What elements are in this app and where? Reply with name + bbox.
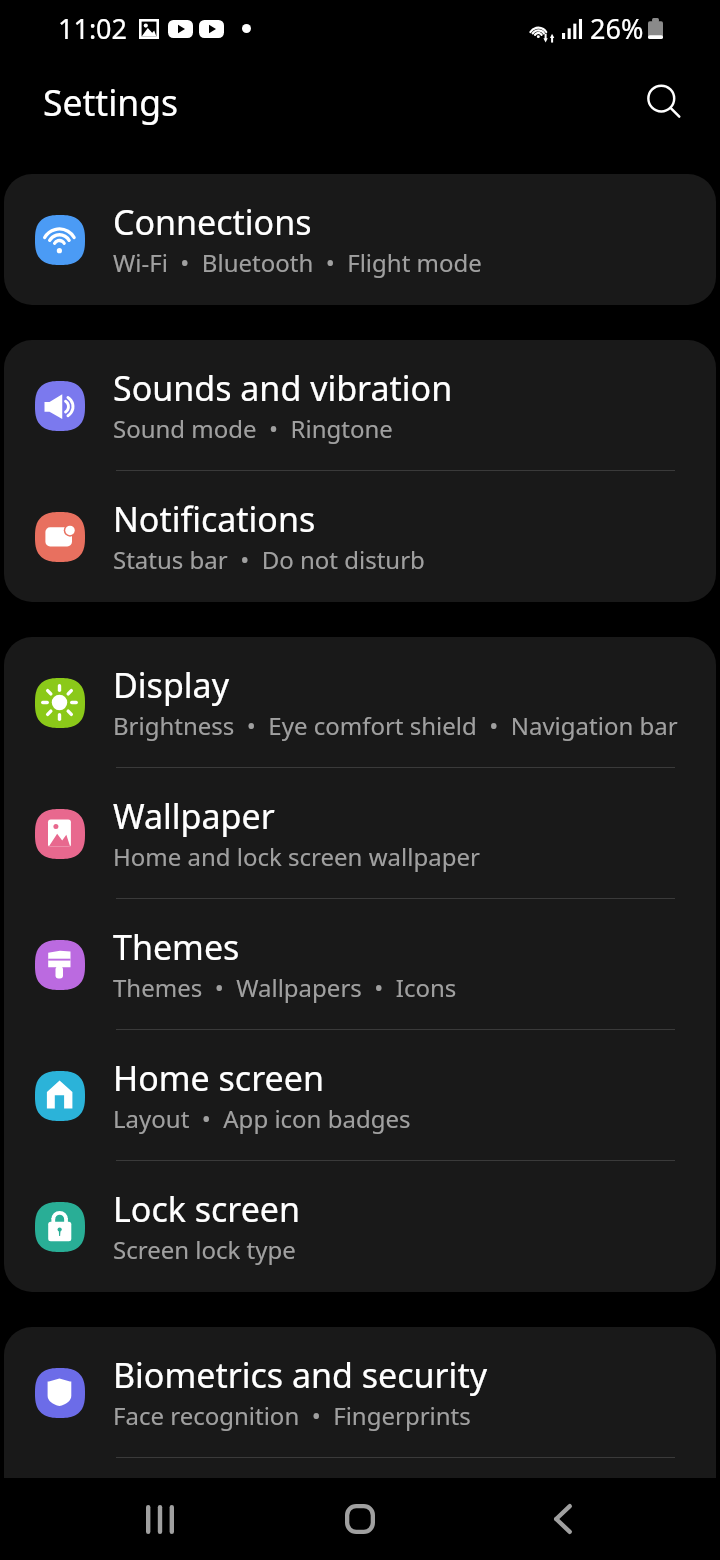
staticText: Home screen xyxy=(113,1055,324,1101)
staticText: Themes xyxy=(113,924,240,970)
staticText: Brightness • Eye comfort shield • Naviga… xyxy=(113,709,678,742)
button[interactable]: Back xyxy=(515,1478,611,1560)
staticText: Screen lock type xyxy=(113,1233,296,1266)
staticText: Connections xyxy=(113,199,312,245)
staticText: Themes • Wallpapers • Icons xyxy=(113,971,457,1004)
staticText: Wallpaper xyxy=(113,793,275,839)
staticText: Wi-Fi • Bluetooth • Flight mode xyxy=(113,246,482,279)
button[interactable]: Lock screen xyxy=(4,1161,716,1292)
staticText: 26% xyxy=(590,10,644,47)
staticText: Face recognition • Fingerprints xyxy=(113,1399,471,1432)
staticText: 11:02 xyxy=(58,10,128,47)
button[interactable]: Home screen xyxy=(4,1030,716,1161)
staticText: Biometrics and security xyxy=(113,1352,487,1398)
staticText: Settings xyxy=(43,78,179,126)
button[interactable]: Display xyxy=(4,637,716,768)
staticText: Lock screen xyxy=(113,1186,301,1232)
staticText: Sounds and vibration xyxy=(113,365,453,411)
button[interactable]: Search xyxy=(636,74,692,130)
button[interactable]: Biometrics and security xyxy=(4,1327,716,1458)
button[interactable]: Notifications xyxy=(4,471,716,602)
staticText: Status bar • Do not disturb xyxy=(113,543,425,576)
staticText: Privacy xyxy=(113,1468,227,1514)
staticText: Notifications xyxy=(113,496,316,542)
button[interactable]: Connections xyxy=(4,174,716,305)
staticText: Layout • App icon badges xyxy=(113,1102,411,1135)
staticText: Sound mode • Ringtone xyxy=(113,412,393,445)
staticText: Display xyxy=(113,662,229,708)
button[interactable]: Recent apps xyxy=(112,1478,208,1560)
button[interactable]: Themes xyxy=(4,899,716,1030)
button[interactable]: Home xyxy=(312,1478,408,1560)
button[interactable]: Wallpaper xyxy=(4,768,716,899)
button[interactable]: Sounds and vibration xyxy=(4,340,716,471)
staticText: Home and lock screen wallpaper xyxy=(113,840,480,873)
staticText: Permission manager xyxy=(113,1515,347,1548)
button[interactable]: Privacy xyxy=(4,1458,716,1560)
